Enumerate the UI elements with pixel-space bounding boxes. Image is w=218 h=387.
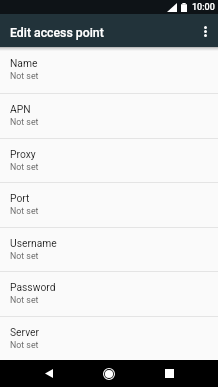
staticText: Username [10,237,57,249]
staticText: Edit access point [10,26,104,40]
staticText: Proxy [10,148,36,160]
staticText: Not set [10,162,39,172]
button[interactable]: APN [0,93,218,138]
staticText: Password [10,281,56,293]
button[interactable]: Proxy [0,138,218,183]
staticText: Not set [10,340,39,350]
staticText: Name [10,57,38,69]
button[interactable]: Name [0,47,218,93]
staticText: Server [10,326,40,338]
staticText: Not set [10,71,39,81]
staticText: Not set [10,206,39,216]
staticText: Not set [10,251,39,261]
staticText: 10:00 [192,2,215,13]
button[interactable]: Server [0,316,218,360]
button[interactable]: Recent apps [139,360,200,387]
button[interactable]: Password [0,271,218,316]
staticText: Port [10,192,30,204]
button[interactable]: Home [79,360,139,387]
button[interactable]: Username [0,227,218,272]
button[interactable]: More options [191,14,218,47]
staticText: APN [10,103,31,115]
staticText: Not set [10,295,39,305]
staticText: Not set [10,117,39,127]
button[interactable]: Port [0,182,218,227]
button[interactable]: Back [18,360,79,387]
